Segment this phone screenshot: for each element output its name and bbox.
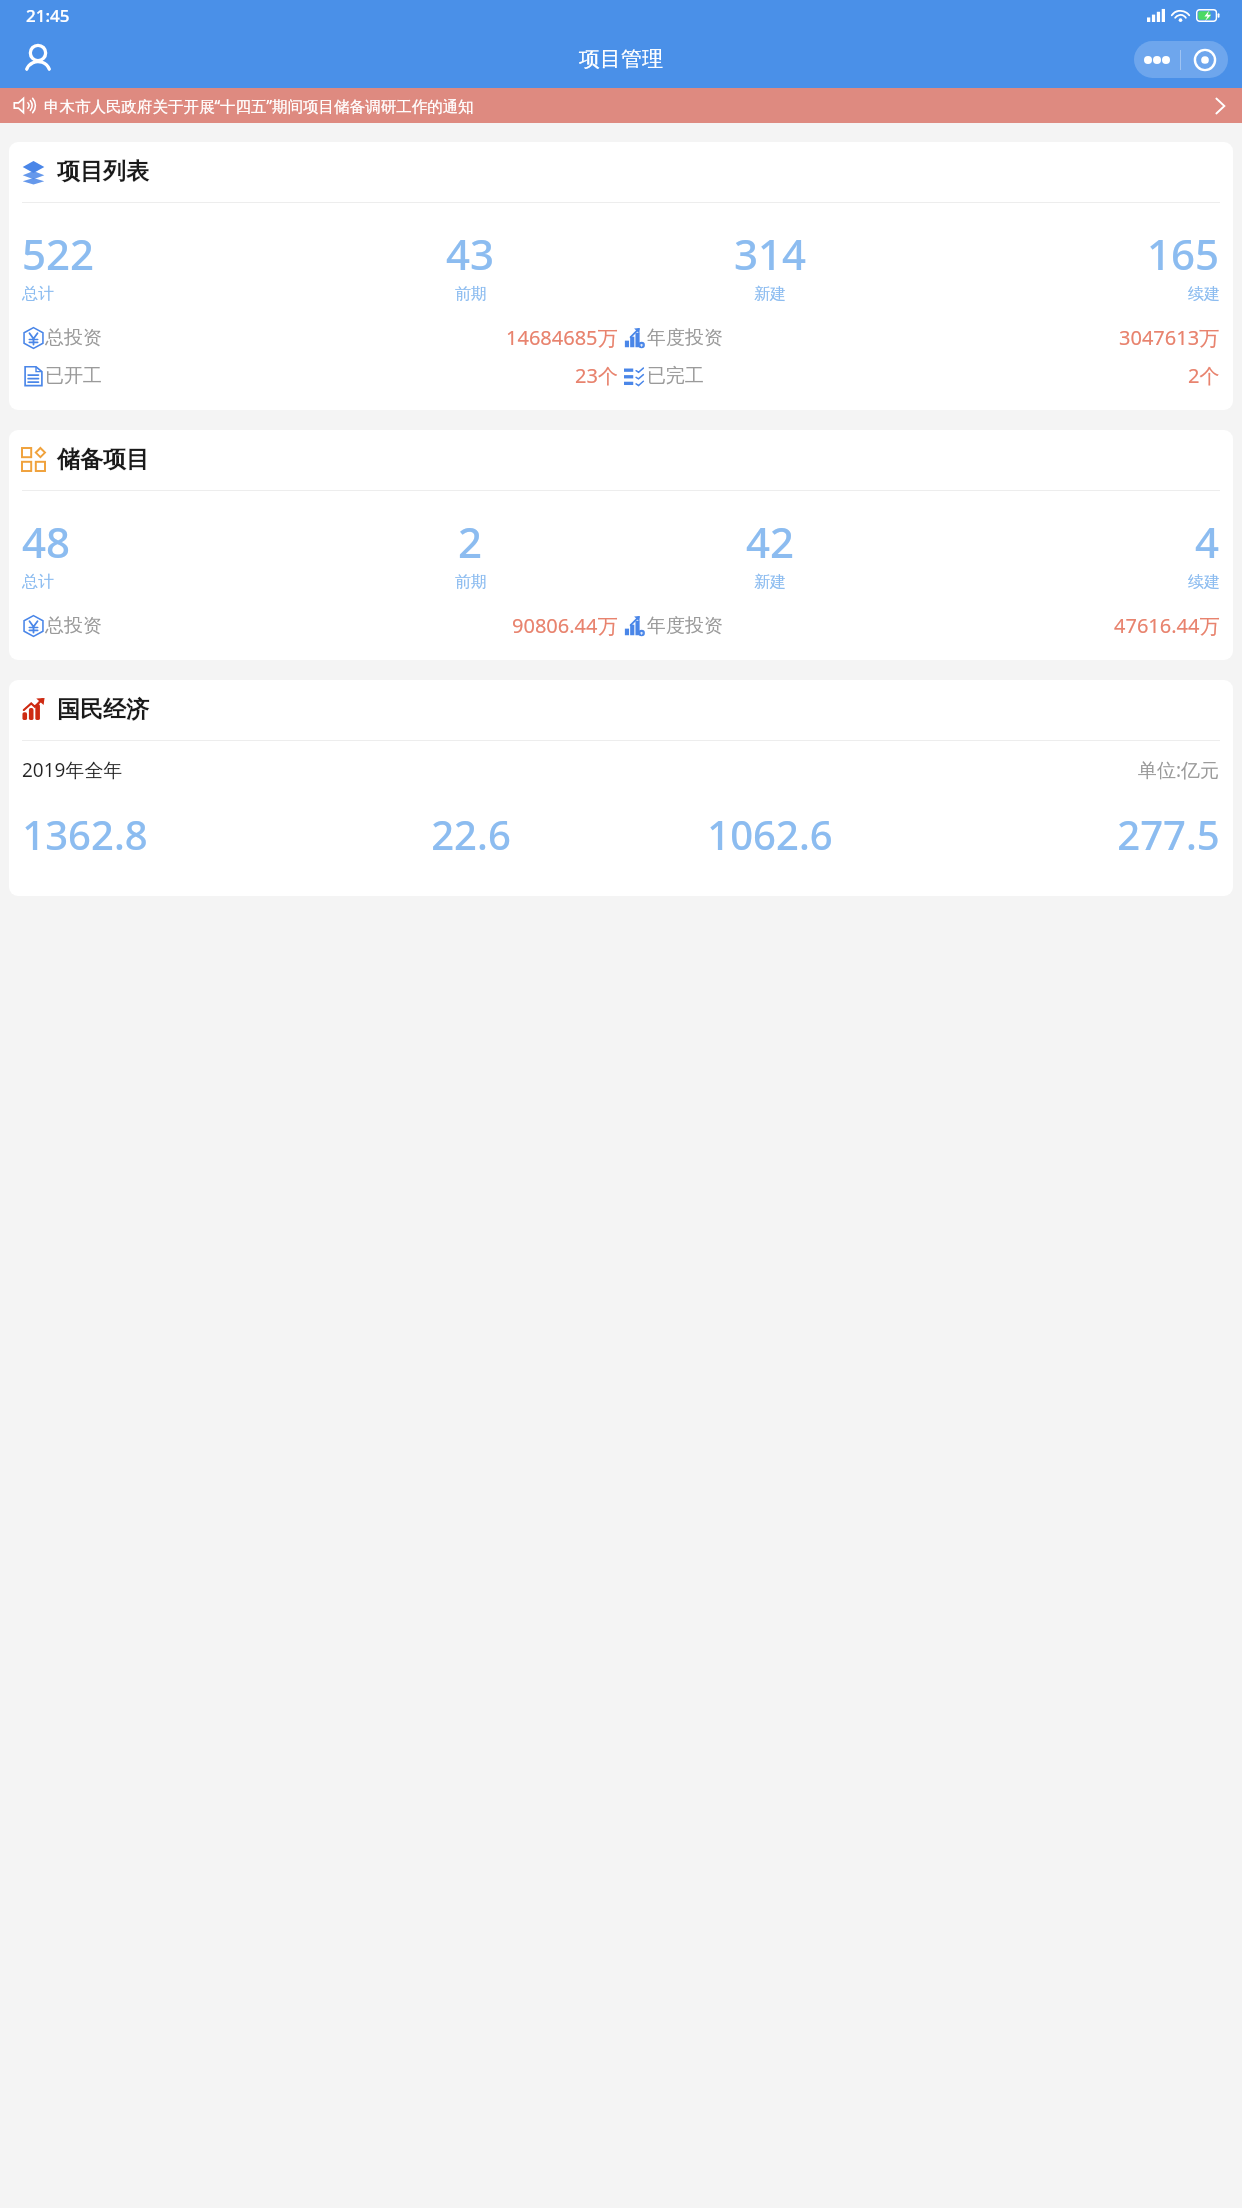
button[interactable]: 165 (920, 225, 1220, 304)
staticText: 2 (458, 513, 483, 570)
staticText: 1362.8 (22, 807, 148, 861)
staticText: 年度投资 (647, 614, 723, 638)
staticText: 总计 (22, 284, 54, 304)
button[interactable]: 48 (22, 513, 321, 592)
staticText: 165 (1147, 225, 1220, 282)
staticText: 22.6 (431, 807, 511, 861)
button[interactable]: 314 (620, 225, 920, 304)
staticText: 总计 (22, 572, 54, 592)
staticText: 已开工 (45, 364, 102, 388)
button[interactable]: 2 (321, 513, 620, 592)
staticText: 14684685万 (506, 324, 618, 351)
button[interactable]: Target (1181, 41, 1228, 78)
staticText: 23个 (575, 362, 618, 389)
staticText: 90806.44万 (512, 612, 618, 639)
button[interactable]: 43 (321, 225, 620, 304)
staticText: 储备项目 (57, 445, 149, 474)
staticText: 新建 (754, 572, 786, 592)
button[interactable]: 年度投资 (624, 324, 1220, 351)
staticText: 2个 (1188, 362, 1220, 389)
other: Next (1198, 88, 1242, 123)
button[interactable]: 已开工 (22, 362, 618, 389)
staticText: 国民经济 (57, 695, 149, 724)
button[interactable]: 1362.8 (22, 807, 321, 861)
staticText: 2019年全年 (22, 757, 123, 783)
staticText: 21:45 (26, 4, 70, 27)
staticText: 单位:亿元 (1138, 757, 1220, 783)
staticText: 续建 (1188, 284, 1220, 304)
button[interactable]: 申木市人民政府关于开展“十四五”期间项目储备调研工作的通知 (0, 88, 1242, 123)
staticText: 已完工 (647, 364, 704, 388)
staticText: 314 (734, 225, 807, 282)
staticText: 前期 (455, 572, 487, 592)
staticText: 总投资 (45, 614, 102, 638)
button[interactable]: 国民经济 (9, 680, 1233, 896)
button[interactable]: 1062.6 (620, 807, 920, 861)
button[interactable]: 4 (920, 513, 1220, 592)
button[interactable]: 已完工 (624, 362, 1220, 389)
staticText: 年度投资 (647, 326, 723, 350)
button[interactable]: More (1134, 41, 1180, 78)
staticText: 48 (22, 513, 71, 570)
button[interactable]: 总投资 (22, 324, 618, 351)
staticText: 4 (1195, 513, 1220, 570)
staticText: 项目管理 (579, 46, 663, 72)
button[interactable]: 年度投资 (624, 612, 1220, 639)
staticText: 47616.44万 (1114, 612, 1220, 639)
staticText: 1062.6 (707, 807, 833, 861)
button[interactable]: 储备项目 (9, 430, 1233, 660)
button[interactable]: 42 (620, 513, 920, 592)
staticText: 续建 (1188, 572, 1220, 592)
staticText: 277.5 (1117, 807, 1220, 861)
staticText: 3047613万 (1119, 324, 1220, 351)
button[interactable]: 总投资 (22, 612, 618, 639)
staticText: 申木市人民政府关于开展“十四五”期间项目储备调研工作的通知 (44, 95, 1198, 116)
button[interactable]: 22.6 (321, 807, 620, 861)
staticText: 42 (746, 513, 795, 570)
button[interactable]: 项目列表 (9, 142, 1233, 410)
staticText: 522 (22, 225, 95, 282)
button[interactable]: 277.5 (920, 807, 1220, 861)
staticText: 新建 (754, 284, 786, 304)
staticText: 前期 (455, 284, 487, 304)
button[interactable]: Profile (12, 33, 64, 85)
button[interactable]: 522 (22, 225, 321, 304)
staticText: 43 (446, 225, 495, 282)
staticText: 总投资 (45, 326, 102, 350)
staticText: 项目列表 (57, 157, 149, 186)
